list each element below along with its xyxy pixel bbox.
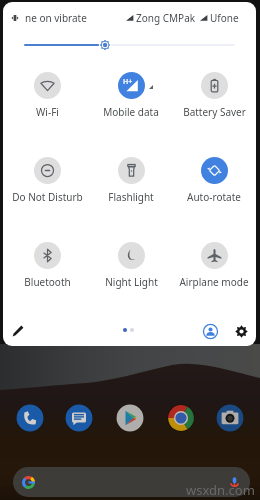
button[interactable]: Messages: [64, 403, 94, 433]
button[interactable]: Wi-Fi: [5, 72, 89, 124]
button[interactable]: Bluetooth: [5, 242, 89, 294]
staticText: Wi-Fi: [36, 105, 59, 119]
button[interactable]: [13, 467, 250, 497]
button[interactable]: Auto-rotate: [172, 157, 256, 209]
staticText: Flashlight: [108, 190, 154, 204]
staticText: Battery Saver: [183, 105, 246, 119]
staticText: ne on vibrate: [25, 11, 87, 25]
staticText: Auto-rotate: [187, 190, 241, 204]
button[interactable]: Battery Saver: [172, 72, 256, 124]
staticText: H+: [123, 77, 133, 87]
button[interactable]: [3, 34, 256, 56]
button[interactable]: Phone: [15, 403, 45, 433]
staticText: Ufone: [210, 11, 239, 25]
staticText: Airplane mode: [179, 275, 249, 289]
staticText: wsxdn.com: [186, 481, 255, 499]
staticText: Do Not Disturb: [12, 190, 83, 204]
button[interactable]: Flashlight: [89, 157, 173, 209]
button[interactable]: Do Not Disturb: [5, 157, 89, 209]
staticText: Bluetooth: [24, 275, 71, 289]
button[interactable]: Camera: [215, 403, 245, 433]
button[interactable]: Play Store: [115, 403, 145, 433]
staticText: Mobile data: [103, 105, 159, 119]
staticText: Zong CMPak: [136, 11, 196, 25]
button[interactable]: Chrome: [166, 403, 196, 433]
staticText: Night Light: [105, 275, 158, 289]
button[interactable]: Edit: [7, 320, 29, 342]
button[interactable]: User account: [199, 320, 221, 342]
button[interactable]: Airplane mode: [172, 242, 256, 294]
button[interactable]: Night Light: [89, 242, 173, 294]
button[interactable]: H+: [89, 72, 173, 124]
button[interactable]: Settings: [230, 320, 252, 342]
